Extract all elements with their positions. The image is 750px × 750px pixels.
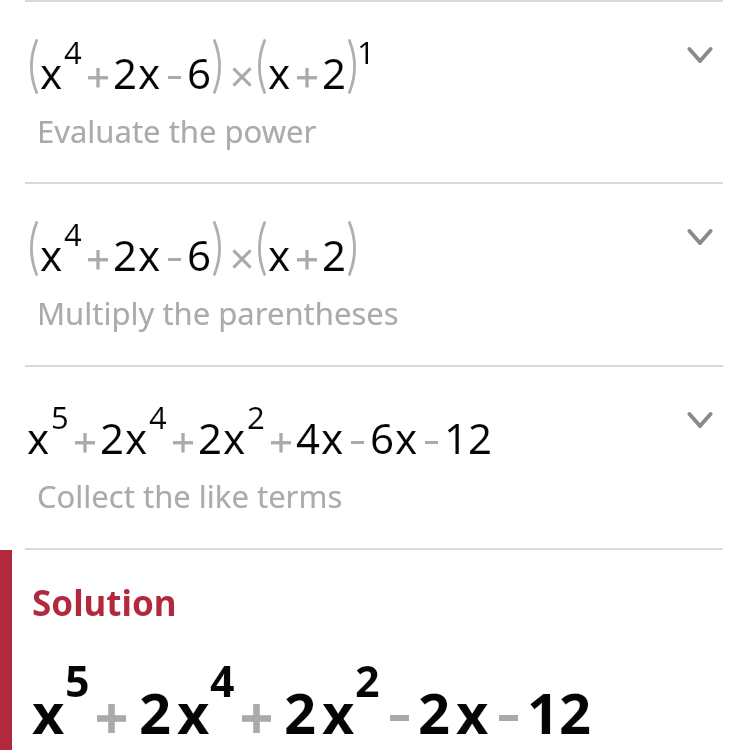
button[interactable]: x <box>0 184 750 365</box>
staticText: 2 <box>355 651 380 710</box>
staticText: 2 <box>139 674 172 750</box>
staticText: Solution <box>32 579 177 627</box>
staticText: 5 <box>65 651 90 710</box>
staticText: 2 <box>113 44 138 101</box>
staticText: 5 <box>51 396 69 438</box>
staticText: 4 <box>64 31 82 73</box>
staticText: x <box>321 409 344 466</box>
staticText: 2 <box>418 674 451 750</box>
staticText: x <box>268 44 291 101</box>
staticText: x <box>125 409 148 466</box>
staticText: Evaluate the power <box>37 110 317 152</box>
staticText: x <box>27 409 50 466</box>
staticText: x <box>395 409 418 466</box>
button[interactable]: Expand step <box>671 208 729 266</box>
staticText: 4 <box>64 213 82 255</box>
staticText: 2 <box>322 226 347 283</box>
staticText: x <box>223 409 246 466</box>
staticText: 2 <box>113 226 138 283</box>
staticText: x <box>456 674 489 750</box>
staticText: 6 <box>370 409 395 466</box>
button[interactable]: Expand step <box>671 391 729 449</box>
staticText: 1 <box>357 31 375 73</box>
staticText: 12 <box>444 409 493 466</box>
staticText: Multiply the parentheses <box>37 292 399 334</box>
staticText: 2 <box>247 396 265 438</box>
staticText: x <box>32 674 65 750</box>
staticText: 6 <box>187 44 212 101</box>
staticText: x <box>138 226 161 283</box>
staticText: x <box>40 226 63 283</box>
staticText: 4 <box>149 396 167 438</box>
staticText: 4 <box>296 409 321 466</box>
staticText: x <box>322 674 355 750</box>
staticText: 2 <box>322 44 347 101</box>
staticText: 2 <box>198 409 223 466</box>
staticText: 2 <box>100 409 125 466</box>
staticText: 4 <box>210 651 235 710</box>
staticText: 2 <box>284 674 317 750</box>
staticText: 12 <box>527 674 592 750</box>
button[interactable]: x <box>0 367 750 548</box>
button[interactable]: Expand step <box>671 26 729 84</box>
staticText: x <box>268 226 291 283</box>
button[interactable]: x <box>0 2 750 182</box>
staticText: x <box>177 674 210 750</box>
staticText: x <box>40 44 63 101</box>
staticText: Collect the like terms <box>37 475 343 517</box>
staticText: 6 <box>187 226 212 283</box>
staticText: x <box>138 44 161 101</box>
